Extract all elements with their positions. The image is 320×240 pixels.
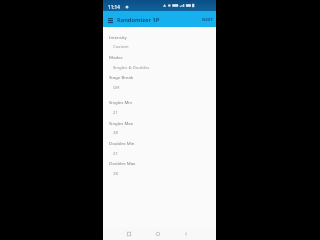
staticText: 11:14: [108, 4, 120, 10]
staticText: Singles Max: [109, 120, 134, 126]
staticText: Off: [113, 84, 120, 90]
staticText: Doubles Max: [109, 160, 136, 166]
button[interactable]: Intensity: [103, 33, 216, 41]
staticText: Randomizer 1P: [117, 16, 160, 24]
button[interactable]: Modes: [103, 53, 216, 61]
staticText: 21: [113, 109, 118, 115]
staticText: Custom: [113, 43, 129, 49]
button[interactable]: Home: [152, 227, 164, 240]
staticText: Modes: [109, 54, 123, 60]
staticText: Singles Min: [109, 99, 133, 105]
button[interactable]: Doubles Max: [103, 159, 216, 167]
staticText: 21: [113, 150, 118, 156]
staticText: Stage Break: [109, 74, 134, 80]
staticText: Intensity: [109, 34, 127, 40]
staticText: Singles & Doubles: [113, 64, 150, 70]
staticText: 28: [113, 170, 118, 176]
button[interactable]: Open navigation drawer: [104, 11, 117, 27]
button[interactable]: Singles Max: [103, 119, 216, 127]
staticText: Doubles Min: [109, 140, 135, 146]
button[interactable]: Singles Min: [103, 98, 216, 106]
button[interactable]: Doubles Min: [103, 139, 216, 147]
staticText: 28: [113, 129, 118, 135]
staticText: NEXT: [202, 17, 213, 23]
button[interactable]: NEXT: [199, 11, 216, 27]
button[interactable]: Recents: [123, 227, 135, 240]
button[interactable]: Back: [180, 227, 192, 240]
button[interactable]: Stage Break: [103, 73, 216, 81]
